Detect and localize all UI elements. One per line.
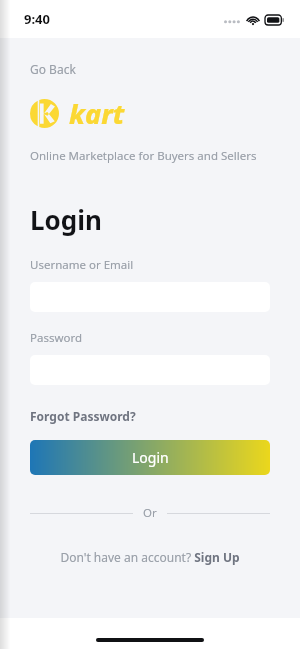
staticText: Don't have an account? Sign Up	[60, 549, 240, 565]
button[interactable]: Go Back	[24, 58, 82, 80]
staticText: 9:40	[24, 10, 50, 28]
staticText: Go Back	[30, 61, 76, 77]
button[interactable]: Forgot Password?	[30, 408, 136, 424]
staticText: Password	[30, 330, 83, 346]
staticText: Forgot Password?	[30, 408, 136, 424]
staticText: kart	[69, 95, 125, 132]
staticText: Username or Email	[30, 257, 134, 273]
staticText: Or	[143, 505, 157, 521]
staticText: Login	[30, 202, 102, 237]
staticText: Login	[132, 448, 169, 467]
staticText: Online Marketplace for Buyers and Seller…	[30, 148, 257, 164]
button[interactable]: Login	[30, 440, 270, 475]
button[interactable]: Don't have an account? Sign Up	[0, 549, 300, 565]
